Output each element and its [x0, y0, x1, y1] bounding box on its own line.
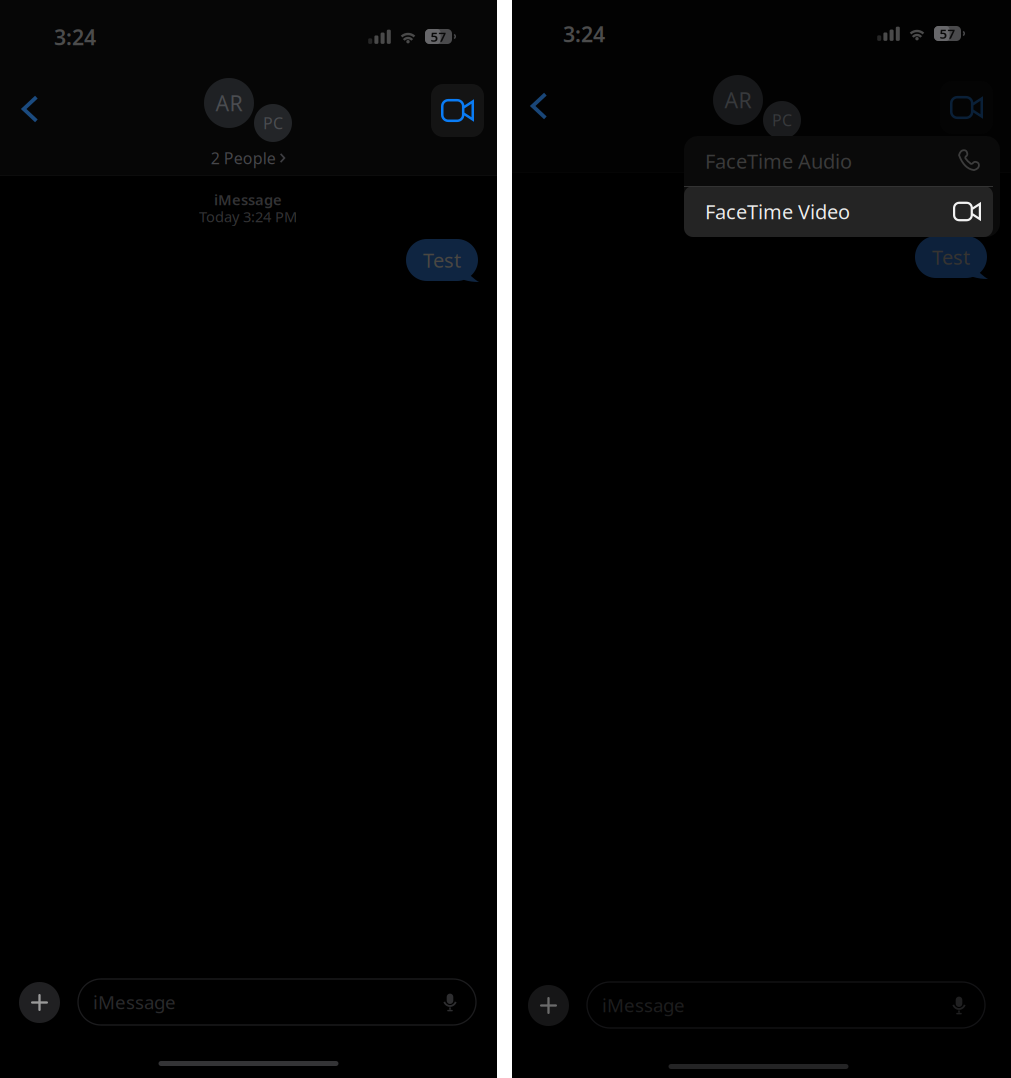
staticText: iMessage: [93, 990, 176, 1014]
button[interactable]: FaceTime: [940, 81, 993, 134]
staticText: Today 3:24 PM: [708, 204, 806, 223]
staticText: 57: [939, 25, 955, 42]
staticText: 57: [430, 28, 446, 45]
staticText: AR: [724, 86, 751, 114]
button[interactable]: 2 People: [689, 146, 825, 164]
button[interactable]: FaceTime Audio: [684, 136, 1000, 186]
button[interactable]: 2 People: [180, 149, 316, 167]
button[interactable]: Add: [528, 985, 569, 1026]
button[interactable]: FaceTime Video: [684, 186, 1000, 237]
staticText: PC: [772, 109, 792, 131]
button[interactable]: Add: [19, 982, 60, 1023]
staticText: AR: [215, 89, 242, 117]
staticText: 2 People: [211, 147, 276, 169]
staticText: 3:24: [563, 20, 605, 48]
staticText: 3:24: [54, 23, 96, 51]
staticText: Today 3:24 PM: [199, 207, 297, 226]
staticText: 2 People: [720, 144, 785, 166]
button[interactable]: Back: [521, 85, 557, 127]
staticText: PC: [263, 112, 283, 134]
staticText: FaceTime Audio: [705, 148, 852, 174]
button[interactable]: FaceTime: [431, 84, 484, 137]
staticText: iMessage: [214, 190, 282, 209]
staticText: iMessage: [602, 993, 685, 1017]
button[interactable]: iMessage: [587, 982, 985, 1028]
button[interactable]: Back: [12, 88, 48, 130]
staticText: FaceTime Video: [705, 198, 850, 225]
staticText: iMessage: [723, 187, 791, 206]
staticText: Test: [932, 244, 970, 270]
button[interactable]: iMessage: [78, 979, 476, 1025]
staticText: Test: [423, 247, 461, 273]
